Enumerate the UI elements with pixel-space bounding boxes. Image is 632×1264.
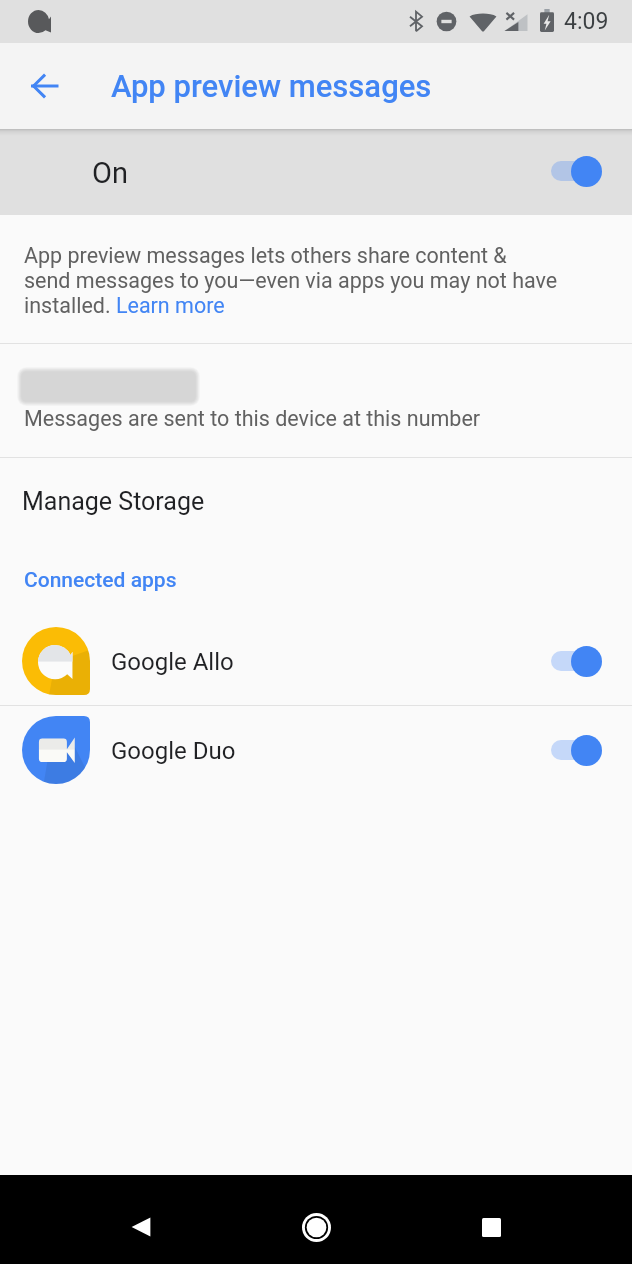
button[interactable]: App preview messages on — [551, 151, 602, 191]
button[interactable]: Google Duo — [0, 706, 632, 794]
staticText: On — [92, 156, 128, 190]
staticText: App preview messages — [111, 68, 432, 104]
button[interactable]: Recent apps — [460, 1196, 522, 1258]
button[interactable]: Navigate up — [14, 57, 72, 115]
staticText: Manage Storage — [22, 487, 205, 516]
button[interactable]: Google Allo — [0, 617, 632, 705]
button[interactable]: Home — [285, 1196, 347, 1258]
button[interactable]: Back — [110, 1196, 172, 1258]
button[interactable]: Google Duo enabled — [551, 730, 602, 770]
staticText: 4:09 — [564, 8, 609, 35]
staticText: App preview messages lets others share c… — [24, 243, 558, 318]
button[interactable]: Google Allo enabled — [551, 641, 602, 681]
button[interactable]: On — [0, 129, 632, 215]
staticText: Messages are sent to this device at this… — [24, 406, 481, 431]
staticText: Google Duo — [111, 737, 236, 765]
button[interactable]: Manage Storage — [0, 458, 632, 543]
staticText: Connected apps — [24, 568, 177, 593]
staticText: Google Allo — [111, 648, 234, 676]
